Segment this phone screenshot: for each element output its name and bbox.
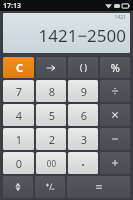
staticText: 1421 <box>114 14 126 21</box>
button[interactable]: C <box>3 57 34 78</box>
staticText: ( ) <box>80 62 87 73</box>
staticText: C <box>15 60 23 75</box>
staticText: 8 <box>48 84 55 99</box>
button[interactable] <box>68 152 98 174</box>
button[interactable]: Sign <box>35 176 65 198</box>
staticText: 9 <box>80 84 87 99</box>
button[interactable]: Multiply <box>100 104 130 126</box>
button[interactable]: 5 <box>36 104 66 126</box>
button[interactable]: % <box>100 57 130 78</box>
button[interactable]: 2 <box>36 128 66 150</box>
button[interactable]: 3 <box>68 128 98 150</box>
staticText: 6 <box>80 108 87 123</box>
button[interactable]: Backspace <box>36 57 66 78</box>
button[interactable]: Divide <box>100 80 130 102</box>
button[interactable]: 4 <box>3 104 34 126</box>
staticText: 0 <box>15 156 22 171</box>
staticText: % <box>110 60 120 75</box>
staticText: 17:13 <box>3 1 21 11</box>
button[interactable]: 6 <box>68 104 98 126</box>
staticText: 3 <box>80 132 87 147</box>
staticText: 2 <box>48 132 55 147</box>
button[interactable]: ( ) <box>68 57 98 78</box>
staticText: 1421−2500 <box>38 24 126 47</box>
button[interactable]: 00 <box>36 152 66 174</box>
staticText: 4 <box>15 108 22 123</box>
button[interactable]: Plus <box>100 152 130 174</box>
button[interactable]: 1 <box>3 128 34 150</box>
button[interactable]: 9 <box>68 80 98 102</box>
staticText: 00 <box>46 158 56 169</box>
button[interactable]: History <box>3 176 33 198</box>
button[interactable]: Minus <box>100 128 130 150</box>
button[interactable]: Equals <box>67 176 130 198</box>
button[interactable]: 7 <box>3 80 34 102</box>
button[interactable]: 0 <box>3 152 34 174</box>
staticText: 5 <box>48 108 55 123</box>
staticText: 1 <box>15 132 22 147</box>
staticText: 7 <box>15 84 22 99</box>
button[interactable]: 8 <box>36 80 66 102</box>
